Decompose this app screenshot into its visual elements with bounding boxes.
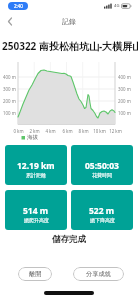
button[interactable]: 05:50:03 <box>71 145 133 185</box>
staticText: 300 m <box>118 86 131 92</box>
staticText: 05:50:03 <box>85 160 119 172</box>
staticText: 總爬升高度 <box>24 217 49 223</box>
staticText: 522 m <box>89 205 115 217</box>
staticText: 10 km <box>93 128 106 134</box>
staticText: 4 km <box>45 128 56 134</box>
staticText: 12 km <box>109 128 122 134</box>
button[interactable]: 12.19 km <box>5 145 67 185</box>
staticText: 記錄 <box>62 17 76 26</box>
staticText: 100 m <box>3 110 16 116</box>
button[interactable]: 522 m <box>71 190 133 230</box>
button[interactable] <box>3 13 19 30</box>
button[interactable]: 離開 <box>18 267 52 281</box>
button[interactable]: 514 m <box>5 190 67 230</box>
staticText: 100 m <box>118 110 131 116</box>
staticText: 2:40 <box>14 3 23 9</box>
staticText: 6 km <box>62 128 73 134</box>
staticText: 分享成就 <box>86 270 111 278</box>
staticText: 儲存完成 <box>52 234 86 245</box>
staticText: 總下降高度 <box>90 217 115 223</box>
staticText: 200 m <box>118 98 131 104</box>
staticText: 0 km <box>13 128 24 134</box>
staticText: 300 m <box>3 86 16 92</box>
staticText: 海拔 <box>27 134 38 141</box>
staticText: 12.19 km <box>17 160 55 172</box>
staticText: 4G <box>114 3 120 9</box>
staticText: 離開 <box>29 270 42 278</box>
staticText: 8 km <box>78 128 89 134</box>
staticText: 514 m <box>23 205 49 217</box>
staticText: 200 m <box>3 98 16 104</box>
staticText: 2 km <box>29 128 40 134</box>
staticText: 累計距離 <box>26 172 46 178</box>
staticText: 250322 南投松柏坑山-大橫屏山 <box>2 39 138 53</box>
staticText: 400 m <box>3 74 16 80</box>
button[interactable]: 分享成就 <box>73 267 124 281</box>
staticText: 400 m <box>118 74 131 80</box>
staticText: 花費時間 <box>92 172 112 178</box>
